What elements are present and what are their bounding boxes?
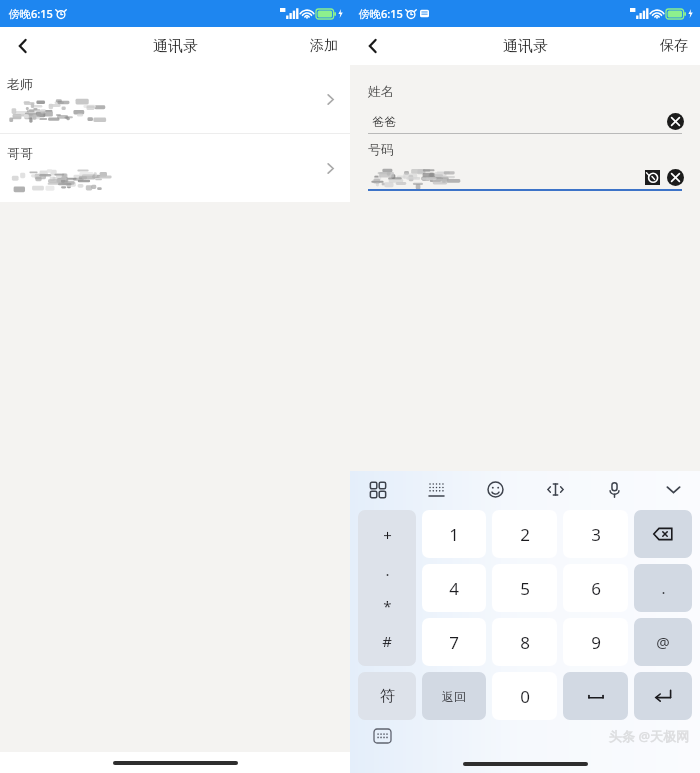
staticText: 9: [591, 631, 601, 654]
staticText: 添加: [310, 37, 338, 55]
staticText: *: [383, 596, 392, 616]
staticText: 号码: [368, 141, 394, 157]
staticText: 哥哥: [7, 145, 33, 161]
button[interactable]: 1: [422, 510, 486, 558]
button[interactable]: 7: [422, 618, 486, 666]
button[interactable]: 哥哥: [0, 134, 350, 202]
button[interactable]: Hide keyboard: [660, 476, 686, 502]
button[interactable]: 6: [563, 564, 628, 612]
button[interactable]: 4: [422, 564, 486, 612]
staticText: 头条 @天极网: [609, 727, 690, 745]
button[interactable]: Voice input: [601, 476, 627, 502]
button[interactable]: 返回: [422, 672, 486, 720]
button[interactable]: 老师: [0, 65, 350, 133]
button[interactable]: 0: [492, 672, 557, 720]
button[interactable]: Pick contact: [645, 170, 660, 185]
button[interactable]: Emoji: [482, 476, 508, 502]
staticText: 保存: [660, 37, 688, 55]
button[interactable]: 符: [358, 672, 416, 720]
button[interactable]: 9: [563, 618, 628, 666]
staticText: 符: [380, 687, 395, 706]
button[interactable]: Enter: [634, 672, 692, 720]
staticText: 4: [449, 577, 459, 600]
button[interactable]: .: [634, 564, 692, 612]
button[interactable]: Keyboard layout: [423, 476, 449, 502]
staticText: 老师: [7, 76, 33, 92]
button[interactable]: 添加: [298, 27, 350, 65]
staticText: 2: [520, 523, 530, 546]
button[interactable]: Space: [563, 672, 628, 720]
staticText: 姓名: [368, 83, 394, 99]
staticText: @: [656, 632, 670, 652]
staticText: 傍晚6:15: [9, 6, 53, 21]
staticText: 通讯录: [153, 37, 198, 56]
button[interactable]: @: [634, 618, 692, 666]
staticText: 7: [449, 631, 459, 654]
button[interactable]: Clear number: [667, 169, 684, 186]
staticText: +: [383, 525, 392, 545]
staticText: 8: [520, 631, 530, 654]
button[interactable]: 5: [492, 564, 557, 612]
button[interactable]: 3: [563, 510, 628, 558]
button[interactable]: Text edit: [542, 476, 568, 502]
button[interactable]: Switch keyboard: [374, 729, 391, 743]
staticText: .: [661, 578, 666, 598]
staticText: 爸爸: [372, 114, 396, 129]
button[interactable]: 保存: [648, 27, 700, 65]
staticText: 返回: [442, 689, 466, 704]
button[interactable]: 8: [492, 618, 557, 666]
button[interactable]: Back: [0, 27, 46, 65]
button[interactable]: Back: [350, 27, 396, 65]
staticText: .: [385, 560, 390, 580]
staticText: 6: [591, 577, 601, 600]
button[interactable]: 2: [492, 510, 557, 558]
button[interactable]: Backspace: [634, 510, 692, 558]
button[interactable]: Symbols + . * #: [358, 510, 416, 666]
staticText: 3: [591, 523, 601, 546]
staticText: 通讯录: [503, 37, 548, 56]
staticText: 5: [520, 577, 530, 600]
button[interactable]: Clear name: [667, 113, 684, 130]
staticText: #: [382, 631, 392, 651]
staticText: 傍晚6:15: [359, 6, 403, 21]
staticText: 0: [520, 685, 530, 708]
staticText: 1: [449, 523, 459, 546]
button[interactable]: Apps: [364, 476, 390, 502]
